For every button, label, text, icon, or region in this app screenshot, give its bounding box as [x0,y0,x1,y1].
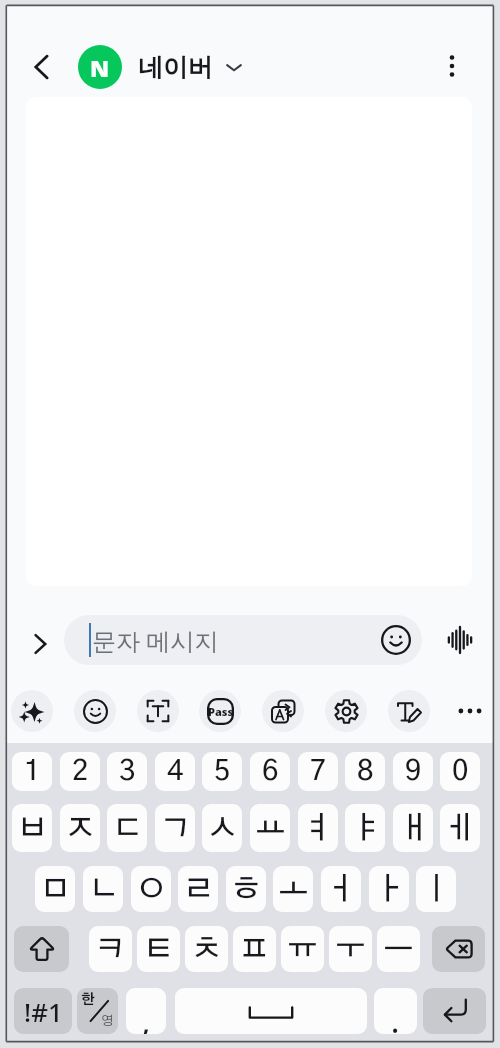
button[interactable]: ㅅ [202,804,242,852]
staticText: ㅓ [326,874,357,905]
button[interactable]: sparkle [11,690,53,732]
button[interactable]: ㅇ [131,866,171,912]
button[interactable]: Backspace [432,926,485,972]
button[interactable]: ㅗ [273,866,313,912]
button[interactable]: ㅐ [393,804,433,852]
button[interactable]: translate [262,690,304,732]
button[interactable]: ㄴ [83,866,123,912]
button[interactable]: ㅊ [185,926,228,972]
button[interactable]: 문자 메시지 [64,615,422,665]
button[interactable]: 4 [155,752,195,791]
staticText: ㄹ [183,874,214,905]
staticText: ㅑ [350,813,381,844]
staticText: !#1 [24,994,63,1029]
button[interactable]: ㅑ [345,804,385,852]
button[interactable]: Emoji [374,618,418,662]
button[interactable]: 9 [393,752,433,791]
staticText: ㅛ [255,813,286,844]
button[interactable]: ㅕ [298,804,338,852]
staticText: 네이버 [138,52,213,83]
staticText: ㅁ [40,874,71,905]
button[interactable]: Enter [423,988,486,1034]
button[interactable]: handwrite [388,690,430,732]
button[interactable]: More [448,689,492,733]
button[interactable]: 8 [345,752,385,791]
staticText: Pass [208,704,234,719]
button[interactable]: Show apps [14,618,66,670]
button[interactable]: settings [325,690,367,732]
staticText: ㅂ [17,813,48,844]
staticText: ㅔ [445,813,476,844]
button[interactable]: ㅓ [321,866,361,912]
staticText: ㅇ [136,874,167,905]
staticText: 문자 메시지 [92,624,219,657]
staticText: 4 [167,757,184,786]
staticText: ㅜ [335,934,366,965]
staticText: ㅠ [287,934,318,965]
button[interactable]: 0 [440,752,480,791]
staticText: ㅊ [191,934,222,965]
staticText: 2 [72,757,89,786]
staticText: ㄷ [112,813,143,844]
staticText: ㅕ [303,813,334,844]
button[interactable]: ㅋ [89,926,132,972]
button[interactable]: pass [199,690,241,732]
staticText: 3 [119,757,136,786]
staticText: ㅎ [231,874,262,905]
button[interactable]: Back [20,45,64,89]
staticText: ㄱ [160,813,191,844]
button[interactable]: ㅏ [369,866,409,912]
button[interactable]: ㅜ [329,926,372,972]
button[interactable]: ㄱ [155,804,195,852]
staticText: ㅡ [383,934,414,965]
staticText: 8 [357,757,374,786]
button[interactable]: ㅌ [137,926,180,972]
button[interactable]: 1 [12,752,52,791]
button[interactable]: ㅣ [416,866,456,912]
staticText: 6 [262,757,279,786]
button[interactable]: ㅛ [250,804,290,852]
staticText: , [142,1001,151,1034]
button[interactable]: ㅎ [226,866,266,912]
staticText: N [90,52,110,83]
staticText: ㅌ [143,934,174,965]
button[interactable]: 2 [60,752,100,791]
button[interactable]: ㅔ [440,804,480,852]
button[interactable]: . [374,988,417,1034]
staticText: ㅐ [398,813,429,844]
staticText: 5 [214,757,231,786]
staticText: 9 [405,757,422,786]
staticText: ㅋ [95,934,126,965]
button[interactable]: Shift [14,926,69,972]
staticText: 0 [452,757,469,786]
button[interactable]: ㅡ [377,926,420,972]
button[interactable]: 6 [250,752,290,791]
button[interactable]: ㄹ [178,866,218,912]
button[interactable]: N [78,43,243,91]
button[interactable]: Space [175,988,367,1034]
button[interactable]: More options [430,44,474,88]
button[interactable]: textscan [137,690,179,732]
button[interactable]: ㅈ [60,804,100,852]
button[interactable]: 7 [298,752,338,791]
button[interactable]: !#1 [14,988,72,1034]
button[interactable]: ㅁ [35,866,75,912]
button[interactable]: 5 [202,752,242,791]
button[interactable]: smile [74,690,116,732]
staticText: ㅗ [278,874,309,905]
staticText: 영 [101,1015,114,1028]
staticText: 1 [24,757,41,786]
button[interactable]: ㄷ [107,804,147,852]
button[interactable]: ㅍ [233,926,276,972]
button[interactable]: , [126,988,166,1034]
staticText: 한 [81,993,95,1007]
staticText: ㅅ [207,813,238,844]
staticText: ㅏ [374,874,405,905]
button[interactable]: Language [77,988,118,1034]
staticText: ㅈ [65,813,96,844]
staticText: 7 [310,757,327,786]
button[interactable]: Voice input [438,618,482,662]
button[interactable]: 3 [107,752,147,791]
button[interactable]: ㅂ [12,804,52,852]
button[interactable]: ㅠ [281,926,324,972]
